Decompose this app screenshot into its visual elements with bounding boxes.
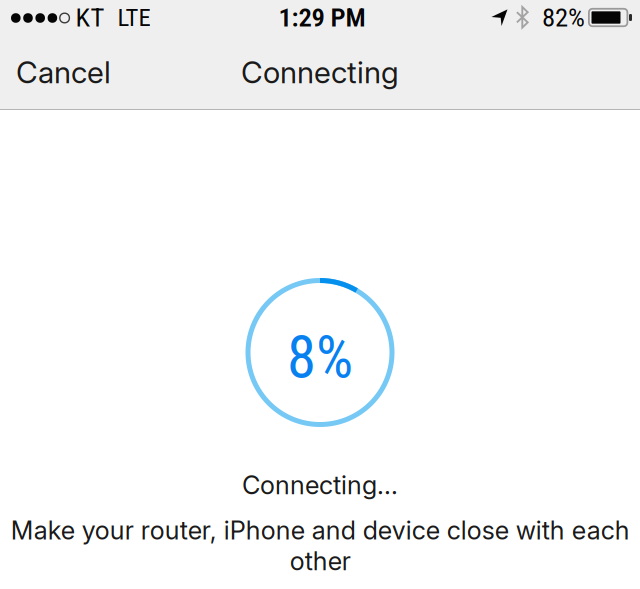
staticText: LTE — [117, 3, 150, 32]
staticText: 8% — [287, 323, 353, 392]
staticText: 1:29 PM — [278, 2, 365, 33]
staticText: KT — [75, 2, 104, 33]
staticText: Cancel — [16, 54, 111, 90]
staticText: Connecting... — [242, 470, 398, 500]
staticText: 82% — [542, 2, 585, 33]
staticText: Make your router, iPhone and device clos… — [10, 515, 629, 576]
staticText: Connecting — [241, 54, 399, 90]
button[interactable]: Cancel — [0, 42, 125, 107]
